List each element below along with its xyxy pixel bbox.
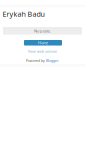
staticText: Blogger. bbox=[46, 58, 59, 63]
staticText: View web version bbox=[28, 49, 57, 54]
staticText: Home bbox=[38, 40, 48, 45]
staticText: Erykah Badu bbox=[2, 9, 44, 19]
staticText: Powered by bbox=[26, 58, 46, 63]
staticText: No posts. bbox=[34, 28, 51, 33]
button[interactable]: Home bbox=[24, 40, 62, 45]
button[interactable]: Blogger. bbox=[46, 58, 59, 63]
button[interactable]: View web version bbox=[28, 49, 57, 54]
